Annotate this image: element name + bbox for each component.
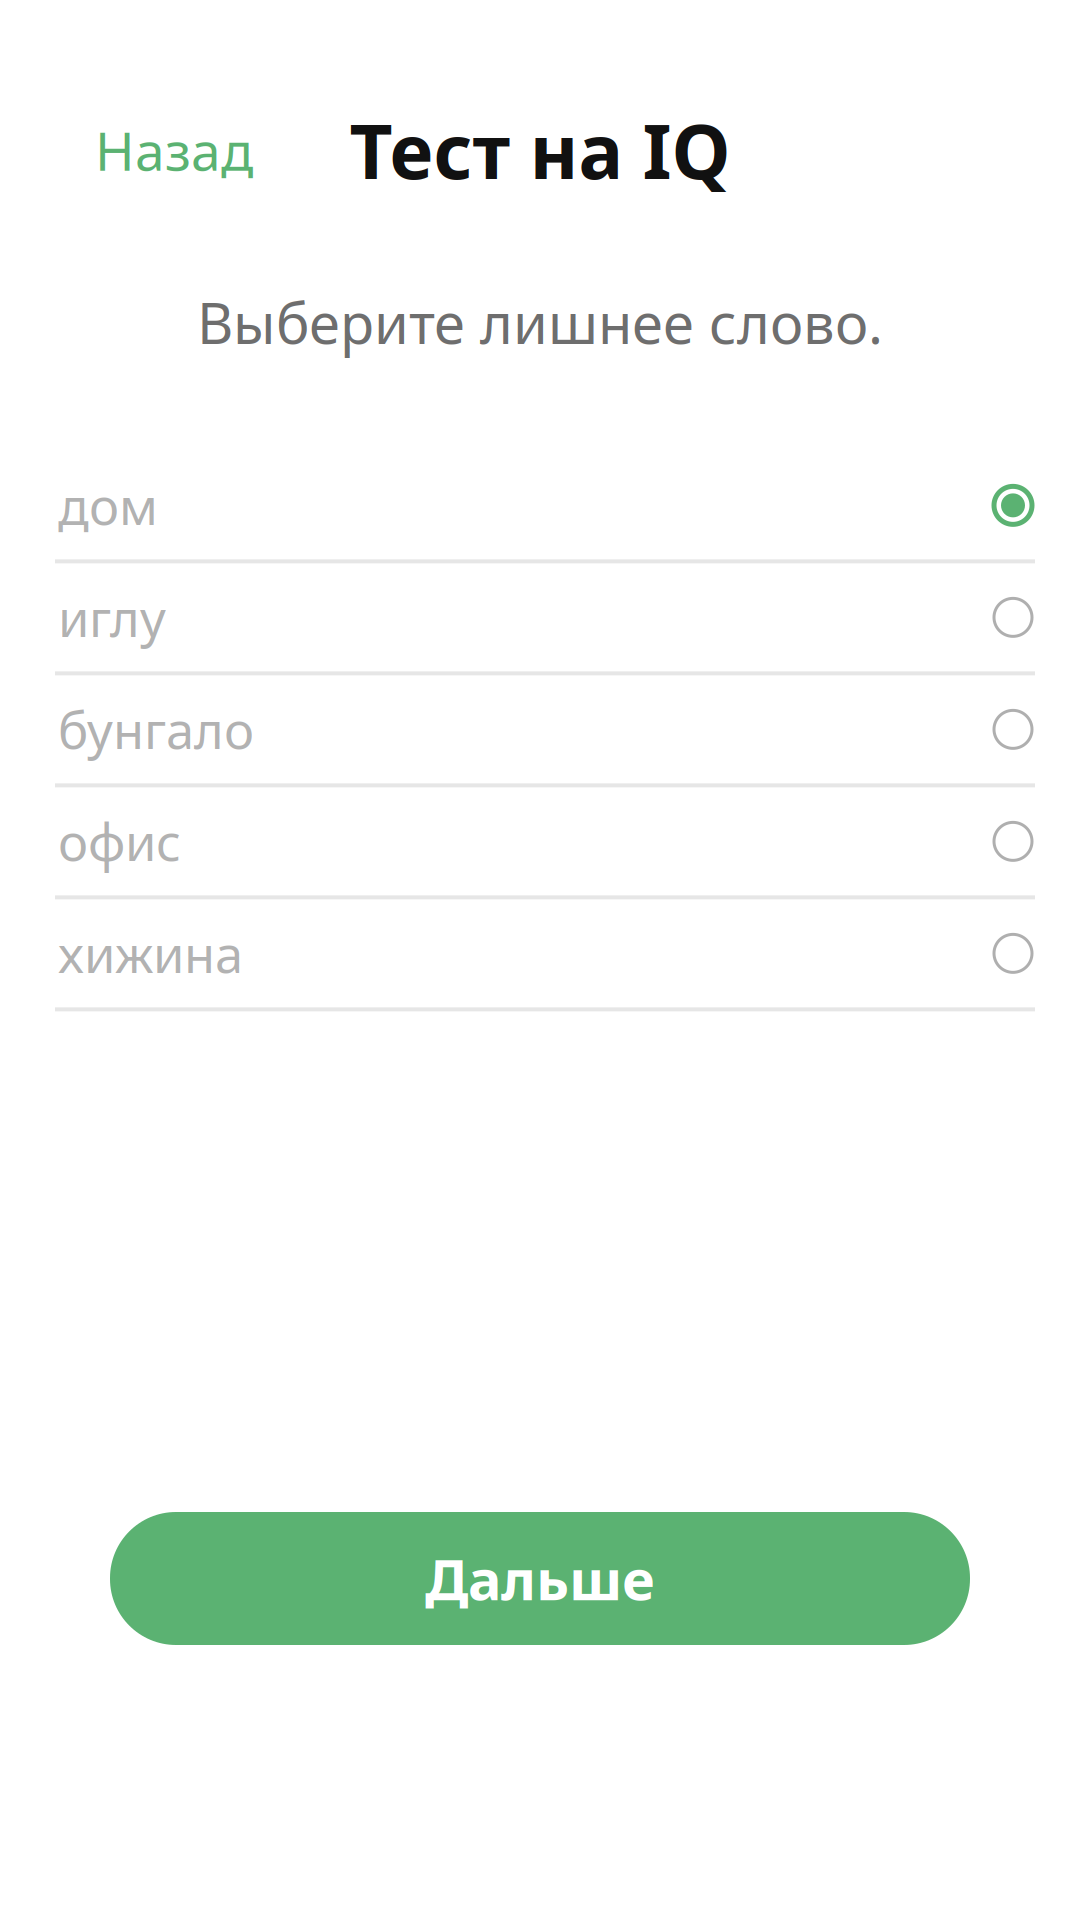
button[interactable]: хижина xyxy=(0,899,1080,1011)
staticText: иглу xyxy=(58,584,166,651)
staticText: Дальше xyxy=(425,1541,655,1616)
staticText: Тест на IQ xyxy=(349,100,730,200)
button[interactable]: бунгало xyxy=(0,675,1080,787)
staticText: бунгало xyxy=(58,696,254,763)
staticText: офис xyxy=(58,808,181,875)
button[interactable]: дом xyxy=(0,451,1080,563)
button[interactable]: иглу xyxy=(0,563,1080,675)
staticText: дом xyxy=(58,472,158,539)
button[interactable]: Назад xyxy=(79,105,269,195)
staticText: хижина xyxy=(58,920,243,987)
staticText: Назад xyxy=(95,115,253,185)
staticText: Выберите лишнее слово. xyxy=(197,285,883,359)
button[interactable]: Дальше xyxy=(110,1512,970,1645)
button[interactable]: офис xyxy=(0,787,1080,899)
